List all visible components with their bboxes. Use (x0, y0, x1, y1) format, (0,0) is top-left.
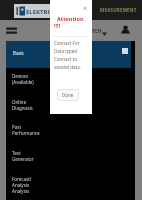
button[interactable]: Online (12, 99, 46, 111)
staticText: Forecast/Analysis (12, 176, 46, 188)
button[interactable]: Past (12, 124, 46, 136)
staticText: Connect For Data typed Connect to second… (54, 40, 81, 71)
staticText: !!!! (54, 22, 61, 29)
button[interactable]: Devices (12, 73, 46, 85)
button[interactable]: MEASUREMENT (100, 7, 137, 13)
staticText: Generator (12, 156, 34, 162)
button[interactable]: Account (119, 23, 132, 36)
button[interactable]: Done (57, 89, 79, 101)
staticText: ELEKTRO (26, 8, 53, 16)
staticText: Basic (13, 50, 24, 56)
staticText: (Available) (12, 79, 34, 85)
staticText: Past (12, 124, 22, 130)
button[interactable]: Close (81, 4, 90, 13)
button[interactable]: Menu (3, 23, 18, 38)
staticText: Test (12, 150, 21, 156)
staticText: Done (62, 92, 74, 98)
staticText: Analysis (12, 188, 30, 194)
button[interactable]: Basic (6, 41, 131, 68)
staticText: × (83, 4, 88, 13)
button[interactable]: Forecast/Analysis (12, 176, 46, 194)
staticText: Attention (57, 15, 84, 22)
staticText: Devices (12, 73, 29, 79)
button[interactable]: ELEKTRO (14, 4, 50, 18)
staticText: Diagnosis (12, 105, 33, 111)
button[interactable]: WATCH (84, 28, 102, 35)
button[interactable]: Test (12, 150, 46, 162)
staticText: Performance (12, 130, 40, 136)
staticText: Online (12, 99, 26, 105)
